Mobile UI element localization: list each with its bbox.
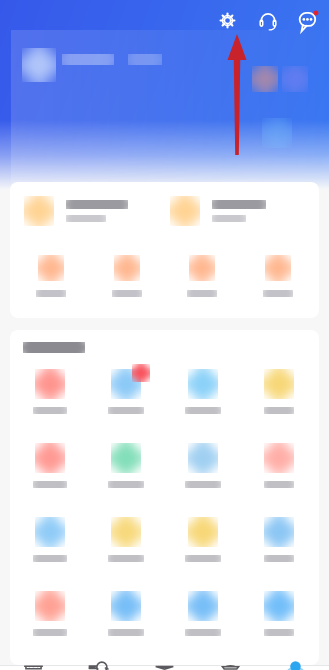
button[interactable]: 商城	[198, 665, 263, 670]
button[interactable]	[14, 585, 86, 657]
button[interactable]: Customer service	[253, 5, 283, 35]
button[interactable]	[243, 511, 315, 583]
button[interactable]	[90, 511, 162, 583]
button[interactable]	[167, 585, 239, 657]
button[interactable]	[243, 437, 315, 509]
button[interactable]	[164, 182, 319, 240]
button[interactable]: 分类	[66, 665, 131, 670]
button[interactable]	[167, 255, 237, 297]
button[interactable]	[90, 585, 162, 657]
button[interactable]: 首页	[1, 665, 66, 670]
button[interactable]: 我的	[263, 665, 328, 670]
button[interactable]	[167, 511, 239, 583]
button[interactable]: 权益	[132, 665, 197, 670]
button[interactable]	[243, 255, 313, 297]
button[interactable]	[243, 363, 315, 435]
button[interactable]: Settings	[212, 5, 242, 35]
button[interactable]	[90, 363, 162, 435]
button[interactable]: Messages	[293, 5, 323, 35]
button[interactable]	[14, 437, 86, 509]
button[interactable]	[10, 182, 164, 240]
button[interactable]	[243, 585, 315, 657]
button[interactable]	[14, 511, 86, 583]
button[interactable]	[16, 255, 86, 297]
button[interactable]	[167, 437, 239, 509]
button[interactable]	[14, 363, 86, 435]
button[interactable]	[92, 255, 162, 297]
button[interactable]	[167, 363, 239, 435]
button[interactable]	[90, 437, 162, 509]
